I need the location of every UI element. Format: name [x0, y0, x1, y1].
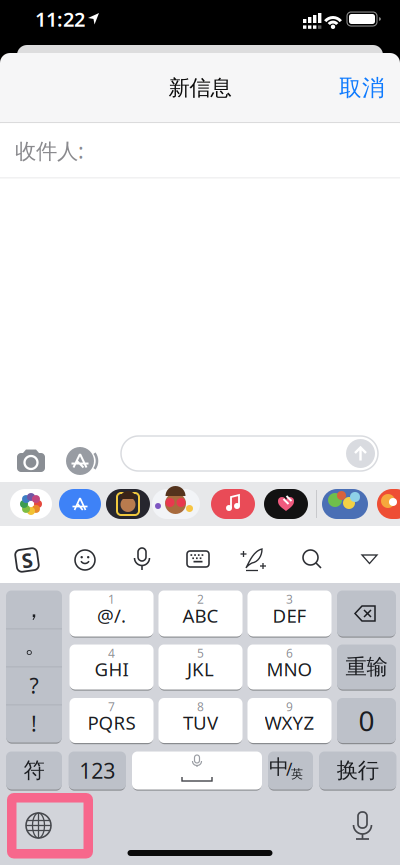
button[interactable]: Sticker pack [322, 489, 368, 519]
button[interactable]: 重输 [337, 644, 396, 689]
staticText: S [21, 547, 32, 573]
staticText: ? [29, 671, 38, 700]
button[interactable]: Send [346, 439, 375, 468]
button[interactable]: Memoji Stickers [106, 489, 150, 519]
staticText: 3 [286, 591, 293, 607]
staticText: 123 [79, 756, 115, 785]
button[interactable]: Handwriting [238, 545, 268, 573]
staticText: 取消 [339, 74, 385, 102]
button[interactable]: 6 [247, 644, 331, 689]
button[interactable]: Dictation [344, 804, 382, 848]
button[interactable]: 7 [69, 698, 153, 743]
staticText: 6 [286, 645, 293, 661]
button[interactable]: 2 [158, 590, 242, 636]
staticText: 重输 [345, 654, 387, 680]
staticText: ， [22, 596, 45, 623]
staticText: 收件人: [15, 136, 84, 165]
button[interactable]: 5 [158, 644, 242, 689]
staticText: @/. [97, 603, 126, 628]
button[interactable]: Voice input [130, 545, 154, 573]
button[interactable]: Space [132, 751, 262, 789]
staticText: TUV [183, 710, 218, 735]
button[interactable]: 取消 [330, 53, 394, 123]
button[interactable]: 1 [69, 590, 153, 636]
button[interactable]: Sogou [12, 545, 42, 575]
staticText: GHI [94, 657, 128, 681]
button[interactable]: 0 [337, 698, 396, 743]
staticText: 11:22 [35, 6, 85, 32]
staticText: JKL [187, 657, 214, 681]
staticText: 英 [291, 767, 303, 781]
staticText: 符 [23, 757, 44, 784]
button[interactable]: Message field [121, 436, 378, 471]
button[interactable]: Music [211, 489, 255, 519]
button[interactable]: 4 [69, 644, 153, 689]
button[interactable]: Next keyboard [14, 804, 63, 848]
staticText: 中 [269, 755, 289, 779]
button[interactable]: 9 [247, 698, 331, 743]
button[interactable]: Search [300, 545, 324, 571]
staticText: 4 [108, 645, 115, 661]
staticText: 1 [108, 591, 115, 607]
button[interactable]: Camera [13, 445, 49, 476]
staticText: ! [31, 709, 37, 738]
staticText: 2 [197, 591, 204, 607]
staticText: WXYZ [264, 710, 314, 735]
button[interactable]: To: [0, 123, 400, 178]
staticText: MNO [266, 657, 312, 681]
button[interactable]: 123 [68, 751, 126, 789]
button[interactable]: Keyboard layouts [185, 549, 211, 569]
staticText: 换行 [337, 757, 379, 784]
staticText: 8 [197, 698, 204, 714]
button[interactable]: More apps [377, 489, 400, 519]
button[interactable]: Photos [10, 489, 52, 519]
staticText: / [286, 757, 292, 780]
button[interactable]: App Store [59, 489, 101, 519]
button[interactable]: Apps [62, 443, 102, 479]
button[interactable]: Dismiss toolbar [358, 548, 382, 568]
button[interactable]: 符 [6, 751, 62, 789]
button[interactable]: 换行 [319, 751, 396, 789]
staticText: PQRS [87, 710, 135, 735]
button[interactable]: Emoji [72, 547, 98, 573]
staticText: 5 [197, 645, 204, 661]
button[interactable]: 3 [247, 590, 331, 636]
staticText: DEF [272, 603, 306, 628]
staticText: ABC [182, 603, 218, 628]
button[interactable]: Delete [337, 590, 396, 636]
staticText: 。 [24, 631, 47, 659]
staticText: 0 [358, 702, 374, 739]
staticText: 新信息 [168, 75, 231, 101]
button[interactable]: Memoji [152, 489, 200, 519]
button[interactable]: Digital Touch [264, 489, 308, 519]
staticText: 9 [286, 698, 293, 714]
staticText: 7 [108, 698, 115, 714]
button[interactable]: Chinese / English [268, 751, 313, 789]
button[interactable]: Punctuation [6, 590, 62, 742]
button[interactable]: 8 [158, 698, 242, 743]
